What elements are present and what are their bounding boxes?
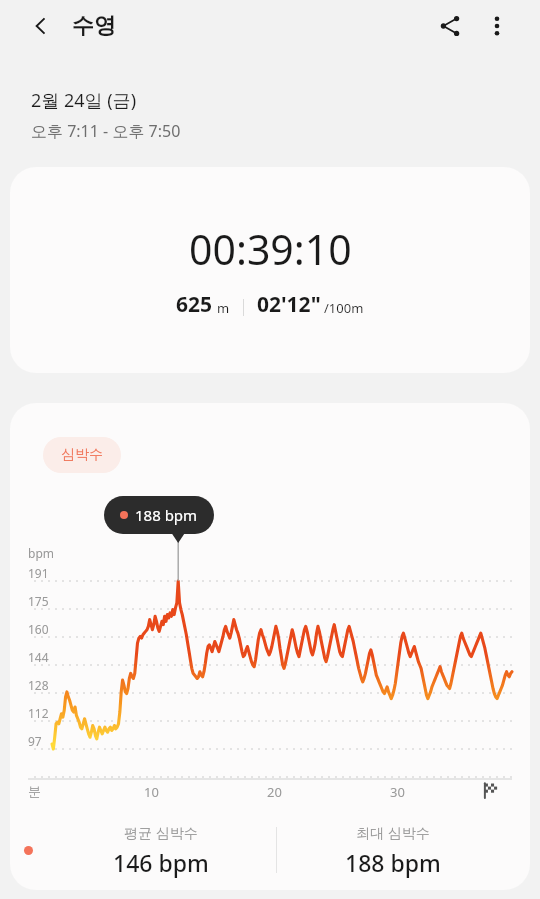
staticText: 112 xyxy=(28,705,49,721)
staticText: 평균 심박수 xyxy=(124,823,198,842)
staticText: 97 xyxy=(28,733,42,749)
other: Finish xyxy=(482,781,500,799)
button[interactable]: 00:39:10 xyxy=(10,167,530,373)
staticText: 10 xyxy=(144,783,159,801)
staticText: 20 xyxy=(267,783,282,801)
staticText: 오후 7:11 - 오후 7:50 xyxy=(31,120,181,142)
staticText: 144 xyxy=(28,649,49,665)
staticText: 160 xyxy=(28,621,49,637)
staticText: 191 xyxy=(28,565,49,581)
staticText: 02'12" xyxy=(257,290,321,319)
staticText: 최대 심박수 xyxy=(356,823,430,842)
staticText: bpm xyxy=(28,545,54,561)
staticText: 심박수 xyxy=(61,446,103,464)
staticText: 분 xyxy=(28,783,41,799)
staticText: 2월 24일 (금) xyxy=(31,88,137,113)
button[interactable]: 심박수 xyxy=(43,437,121,473)
staticText: 188 bpm xyxy=(345,847,441,878)
staticText: 625 xyxy=(176,290,213,319)
staticText: 수영 xyxy=(72,12,116,40)
staticText: 175 xyxy=(28,593,49,609)
staticText: 30 xyxy=(390,783,405,801)
staticText: /100m xyxy=(324,299,364,317)
button[interactable]: Back xyxy=(17,2,65,50)
staticText: 00:39:10 xyxy=(189,221,352,277)
staticText: 128 xyxy=(28,677,49,693)
button[interactable]: More options xyxy=(473,2,521,50)
staticText: 146 bpm xyxy=(113,847,209,878)
staticText: m xyxy=(217,299,230,317)
staticText: 188 bpm xyxy=(135,505,198,525)
button[interactable]: Share xyxy=(426,2,474,50)
